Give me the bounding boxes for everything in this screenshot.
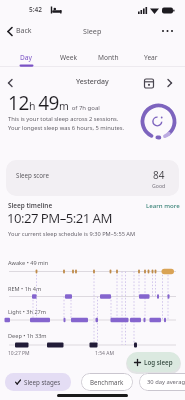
staticText: 10:27 PM [8, 350, 30, 357]
button[interactable] [163, 76, 177, 90]
button[interactable]: Sleep stages [5, 373, 71, 391]
button[interactable]: Day [6, 53, 46, 62]
staticText: Week [60, 53, 77, 62]
button[interactable] [157, 23, 179, 39]
button[interactable] [4, 23, 34, 39]
staticText: This is your total sleep across 2 sessio… [8, 115, 119, 123]
staticText: REM • 1h 4m [8, 285, 42, 293]
staticText: 1:54 AM [95, 350, 114, 357]
staticText: Year [144, 53, 158, 62]
button[interactable]: Week [48, 53, 88, 62]
button[interactable] [144, 199, 180, 211]
staticText: Learn more [146, 201, 180, 209]
staticText: 12h 49m of 7h goal [8, 90, 100, 116]
staticText: Deep • 1h 33m [8, 332, 47, 340]
button[interactable]: Log sleep [127, 352, 180, 372]
staticText: Sleep timeline [8, 201, 53, 210]
button[interactable]: Benchmark [81, 373, 133, 391]
button[interactable] [3, 76, 19, 90]
staticText: 30 day average [147, 378, 185, 386]
staticText: Sleep [83, 26, 102, 36]
staticText: Your longest sleep was 6 hours, 5 minute… [8, 124, 125, 132]
staticText: Day [20, 53, 33, 62]
button[interactable]: 30 day average [139, 373, 185, 391]
button[interactable]: Year [131, 53, 171, 62]
staticText: Month [98, 53, 119, 62]
staticText: Awake • 49 min [8, 259, 49, 267]
button[interactable] [68, 76, 116, 90]
button[interactable]: Sleep score [6, 160, 179, 196]
staticText: Sleep score [16, 171, 49, 179]
staticText: Yesterday [76, 77, 109, 87]
staticText: Light • 3h 27m [8, 308, 47, 316]
staticText: Back [16, 26, 32, 36]
button[interactable] [140, 76, 158, 90]
staticText: Your current sleep schedule is 9:30 PM–5… [8, 230, 136, 238]
staticText: 5:42 [29, 5, 42, 14]
staticText: 84 [153, 168, 165, 182]
staticText: 10:27 PM–5:21 AM [7, 209, 112, 227]
staticText: Benchmark [90, 378, 124, 386]
staticText: Sleep stages [24, 378, 61, 386]
staticText: Good [152, 182, 166, 189]
button[interactable]: Month [88, 53, 128, 62]
staticText: Log sleep [144, 358, 173, 366]
